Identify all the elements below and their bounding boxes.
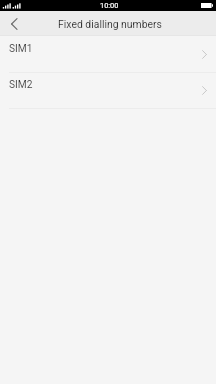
staticText: SIM2 bbox=[9, 79, 33, 91]
button[interactable]: Back bbox=[0, 11, 28, 36]
button[interactable]: SIM1 bbox=[0, 36, 216, 72]
staticText: SIM1 bbox=[9, 43, 33, 55]
button[interactable]: SIM2 bbox=[0, 72, 216, 108]
staticText: Fixed dialling numbers bbox=[58, 18, 162, 30]
staticText: 10:00 bbox=[100, 1, 119, 10]
